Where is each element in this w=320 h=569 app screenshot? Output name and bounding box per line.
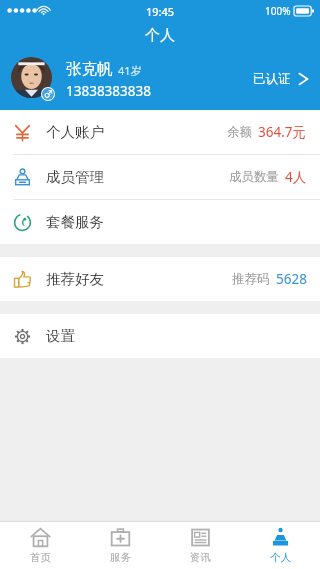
staticText: 364.7元 (258, 123, 307, 141)
staticText: 余额 (227, 124, 252, 140)
staticText: 个人账户 (46, 123, 104, 141)
staticText: 服务 (110, 551, 131, 564)
staticText: 100% (265, 4, 291, 18)
staticText: 已认证 (253, 71, 291, 87)
button[interactable]: 套餐服务 (0, 200, 320, 244)
button[interactable]: 张克帆 (0, 48, 320, 110)
button[interactable]: 设置 (0, 314, 320, 358)
button[interactable]: 成员管理 (0, 155, 320, 199)
button[interactable]: 资讯 (160, 522, 240, 569)
button[interactable]: 个人账户 (0, 110, 320, 154)
staticText: 资讯 (190, 551, 211, 564)
staticText: 推荐码 (232, 271, 270, 287)
button[interactable]: 推荐好友 (0, 257, 320, 301)
button[interactable]: 首页 (0, 522, 80, 569)
staticText: 19:45 (146, 4, 175, 19)
button[interactable]: 服务 (80, 522, 160, 569)
button[interactable]: 个人 (240, 522, 320, 569)
staticText: 个人 (270, 551, 291, 564)
staticText: 成员管理 (46, 168, 104, 186)
staticText: 套餐服务 (46, 213, 104, 231)
staticText: 张克帆 (66, 59, 113, 79)
staticText: 推荐好友 (46, 270, 104, 288)
staticText: 成员数量 (229, 169, 279, 185)
staticText: 4人 (285, 168, 307, 186)
staticText: 5628 (276, 270, 307, 288)
staticText: 设置 (46, 327, 75, 345)
staticText: 个人 (145, 26, 175, 45)
staticText: 首页 (30, 551, 51, 564)
staticText: 13838383838 (66, 82, 151, 100)
staticText: 41岁 (118, 63, 142, 78)
